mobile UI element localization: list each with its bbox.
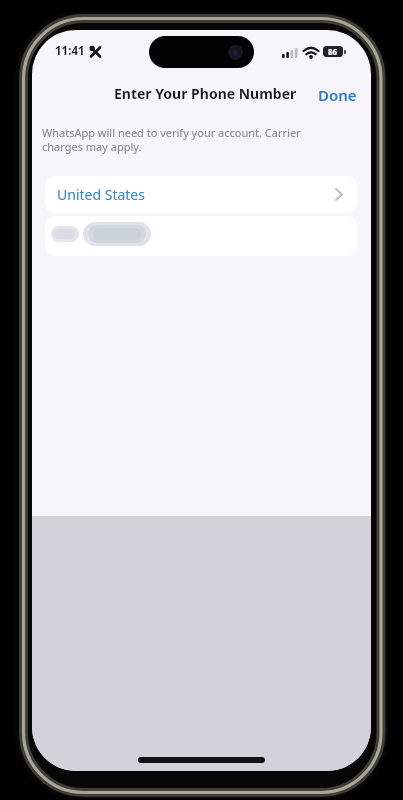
staticText: Done xyxy=(318,85,357,105)
button[interactable]: United States xyxy=(45,176,357,213)
staticText: WhatsApp will need to verify your accoun… xyxy=(42,125,301,154)
staticText: Enter Your Phone Number xyxy=(114,84,297,103)
staticText: United States xyxy=(57,185,145,204)
staticText: 11:41 xyxy=(55,43,85,59)
button[interactable] xyxy=(45,216,357,256)
button[interactable]: Done xyxy=(314,81,361,109)
staticText: 86 xyxy=(328,46,338,57)
